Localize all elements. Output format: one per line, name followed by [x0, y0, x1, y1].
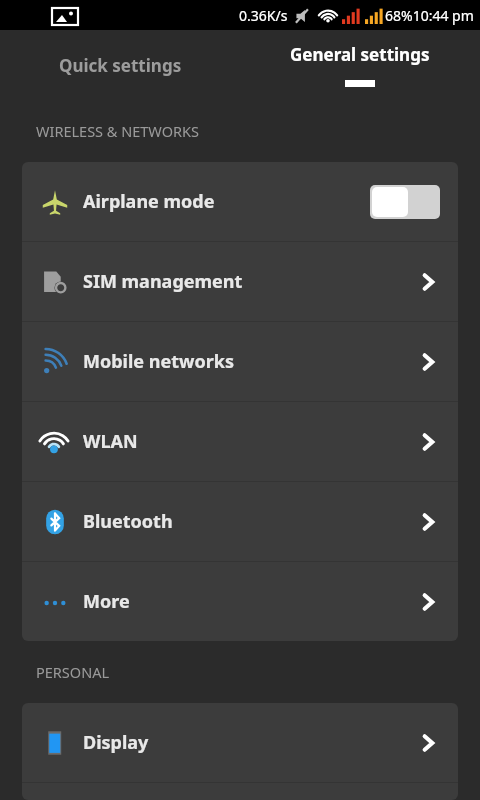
staticText: Mobile networks	[83, 349, 234, 374]
button[interactable]: Display	[22, 703, 458, 782]
button[interactable]: Airplane mode	[22, 162, 458, 241]
button[interactable]: Quick settings	[0, 30, 240, 100]
button[interactable]: SIM management	[22, 242, 458, 321]
staticText: SIM management	[83, 269, 243, 294]
staticText: Display	[83, 730, 149, 755]
staticText: General settings	[290, 43, 430, 66]
staticText: 68%10:44 pm	[385, 6, 474, 25]
button[interactable]: WLAN	[22, 402, 458, 481]
button[interactable]: Airplane mode toggle	[370, 185, 440, 219]
staticText: More	[83, 589, 130, 614]
staticText: 0.36K/s	[239, 6, 288, 25]
button[interactable]: General settings	[240, 30, 480, 100]
button[interactable]: Mobile networks	[22, 322, 458, 401]
staticText: Quick settings	[59, 54, 182, 77]
button[interactable]: More	[22, 562, 458, 641]
button[interactable]: Bluetooth	[22, 482, 458, 561]
staticText: WIRELESS & NETWORKS	[36, 121, 199, 141]
staticText: Airplane mode	[83, 189, 215, 214]
staticText: WLAN	[83, 429, 138, 454]
staticText: Bluetooth	[83, 509, 173, 534]
staticText: PERSONAL	[36, 662, 110, 682]
